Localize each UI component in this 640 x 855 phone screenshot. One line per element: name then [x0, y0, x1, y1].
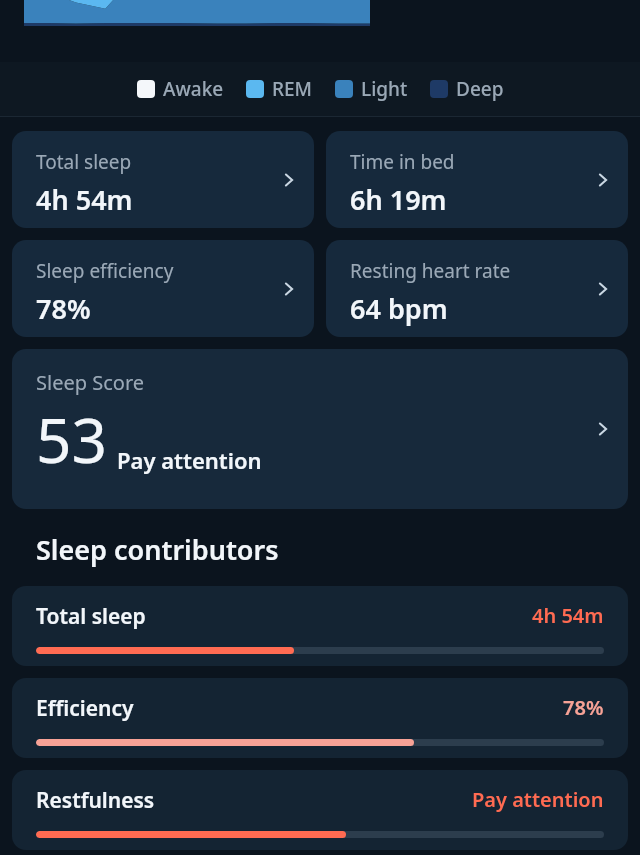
button[interactable]: Sleep Score: [12, 349, 628, 509]
button[interactable]: Sleep efficiency: [12, 240, 314, 337]
staticText: 64 bpm: [350, 290, 448, 327]
button[interactable]: Restfulness: [12, 770, 628, 850]
staticText: Sleep Score: [36, 369, 145, 396]
staticText: 6h 19m: [350, 181, 447, 218]
staticText: Awake: [163, 76, 224, 102]
staticText: Sleep contributors: [36, 531, 279, 568]
staticText: Total sleep: [36, 149, 132, 175]
staticText: Time in bed: [350, 149, 455, 175]
button[interactable]: Resting heart rate: [326, 240, 628, 337]
staticText: Efficiency: [36, 694, 134, 723]
staticText: Pay attention: [117, 445, 262, 475]
staticText: Pay attention: [472, 786, 604, 813]
staticText: Restfulness: [36, 786, 155, 815]
button[interactable]: Total sleep: [12, 586, 628, 666]
button[interactable]: Time in bed: [326, 131, 628, 228]
staticText: Deep: [456, 76, 504, 102]
staticText: 4h 54m: [532, 602, 604, 629]
staticText: 53: [36, 397, 107, 481]
staticText: REM: [272, 76, 313, 102]
staticText: 78%: [36, 290, 91, 327]
staticText: Light: [361, 76, 408, 102]
staticText: 78%: [563, 694, 604, 721]
staticText: Sleep efficiency: [36, 258, 174, 284]
button[interactable]: Efficiency: [12, 678, 628, 758]
button[interactable]: Total sleep: [12, 131, 314, 228]
staticText: 4h 54m: [36, 181, 133, 218]
staticText: Resting heart rate: [350, 258, 511, 284]
staticText: Total sleep: [36, 602, 146, 631]
